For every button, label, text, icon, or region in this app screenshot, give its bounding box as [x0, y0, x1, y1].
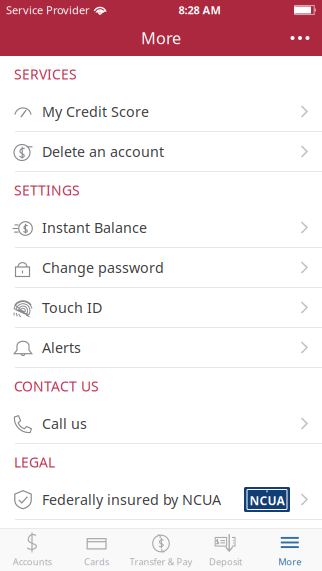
staticText: More: [278, 555, 301, 568]
button[interactable]: Deposit: [193, 529, 258, 571]
staticText: Cards: [84, 555, 109, 568]
staticText: Instant Balance: [42, 218, 147, 237]
staticText: Change password: [42, 258, 164, 277]
staticText: My Credit Score: [42, 102, 149, 121]
staticText: Alerts: [42, 338, 81, 357]
button[interactable]: Delete an account: [0, 132, 322, 172]
staticText: More: [141, 27, 181, 49]
button[interactable]: Cards: [64, 529, 129, 571]
staticText: Delete an account: [42, 142, 164, 161]
button[interactable]: Touch ID: [0, 288, 322, 328]
staticText: Service Provider: [6, 2, 90, 18]
staticText: CONTACT US: [14, 377, 99, 395]
staticText: Call us: [42, 414, 87, 433]
button[interactable]: Instant Balance: [0, 208, 322, 248]
button[interactable]: More: [258, 529, 322, 571]
staticText: 8:28 AM: [178, 2, 220, 18]
staticText: Touch ID: [42, 298, 102, 317]
staticText: SETTINGS: [14, 181, 80, 199]
staticText: Federally insured by NCUA: [42, 490, 221, 509]
button[interactable]: Transfer & Pay: [129, 529, 193, 571]
staticText: NCUA: [249, 492, 284, 509]
button[interactable]: More options: [278, 20, 322, 56]
staticText: LEGAL: [14, 453, 55, 471]
button[interactable]: My Credit Score: [0, 92, 322, 132]
staticText: Deposit: [209, 555, 242, 568]
staticText: Accounts: [13, 555, 52, 568]
button[interactable]: Federally insured by NCUA: [0, 480, 322, 520]
button[interactable]: Accounts: [0, 529, 64, 571]
button[interactable]: Alerts: [0, 328, 322, 368]
button[interactable]: Call us: [0, 404, 322, 444]
button[interactable]: Change password: [0, 248, 322, 288]
staticText: SERVICES: [14, 65, 77, 83]
staticText: Transfer & Pay: [129, 555, 192, 568]
